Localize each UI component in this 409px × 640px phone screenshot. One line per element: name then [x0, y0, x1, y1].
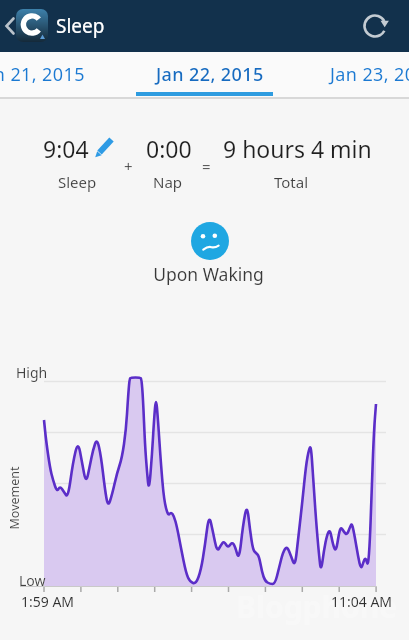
- button[interactable]: Jan 22, 2015: [156, 62, 264, 87]
- staticText: 1:59 AM: [21, 592, 75, 611]
- button[interactable]: 9:04: [43, 133, 89, 164]
- staticText: Low: [19, 571, 46, 590]
- staticText: 9 hours 4 min: [223, 133, 372, 164]
- button[interactable]: [361, 12, 389, 40]
- button[interactable]: Jan 23, 2015: [330, 62, 409, 87]
- staticText: +: [124, 156, 133, 176]
- staticText: Blogphone: [236, 586, 398, 627]
- button[interactable]: [16, 9, 48, 42]
- staticText: Total: [274, 172, 309, 192]
- staticText: =: [202, 156, 211, 176]
- button[interactable]: Jan 21, 2015: [0, 62, 85, 87]
- staticText: Nap: [153, 172, 183, 192]
- staticText: Sleep: [56, 13, 105, 39]
- staticText: 0:00: [146, 133, 192, 164]
- staticText: High: [16, 363, 48, 382]
- staticText: Movement: [5, 465, 22, 529]
- staticText: Sleep: [58, 172, 97, 192]
- staticText: Upon Waking: [4, 262, 409, 286]
- staticText: 11:04 AM: [331, 592, 393, 611]
